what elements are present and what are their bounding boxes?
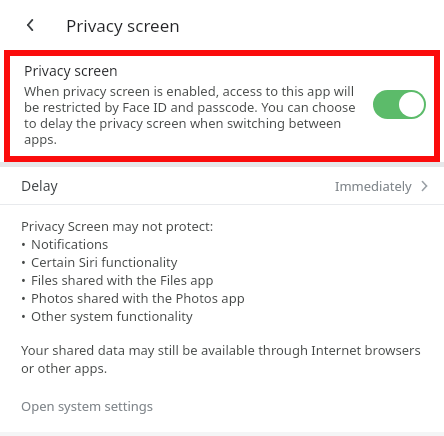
- staticText: Your shared data may still be available …: [21, 341, 428, 377]
- staticText: •: [21, 271, 26, 289]
- staticText: •: [21, 235, 26, 253]
- staticText: Immediately: [335, 177, 412, 195]
- button[interactable]: Delay: [0, 167, 444, 204]
- staticText: Delay: [21, 176, 58, 195]
- button[interactable]: Back: [14, 8, 48, 42]
- staticText: Notifications: [31, 235, 109, 253]
- staticText: Certain Siri functionality: [31, 253, 178, 271]
- staticText: Files shared with the Files app: [31, 271, 214, 289]
- staticText: •: [21, 289, 26, 307]
- staticText: Open system settings: [21, 397, 154, 415]
- staticText: Privacy Screen may not protect:: [21, 217, 214, 235]
- staticText: Photos shared with the Photos app: [31, 289, 245, 307]
- staticText: Privacy screen: [24, 61, 118, 80]
- button[interactable]: Open system settings: [0, 395, 444, 423]
- button[interactable]: Privacy screen: [24, 61, 426, 147]
- staticText: •: [21, 307, 26, 325]
- staticText: When privacy screen is enabled, access t…: [24, 82, 367, 147]
- staticText: •: [21, 253, 26, 271]
- button[interactable]: Privacy screen toggle, on: [373, 90, 426, 119]
- staticText: Privacy screen: [66, 14, 180, 37]
- staticText: Other system functionality: [31, 307, 193, 325]
